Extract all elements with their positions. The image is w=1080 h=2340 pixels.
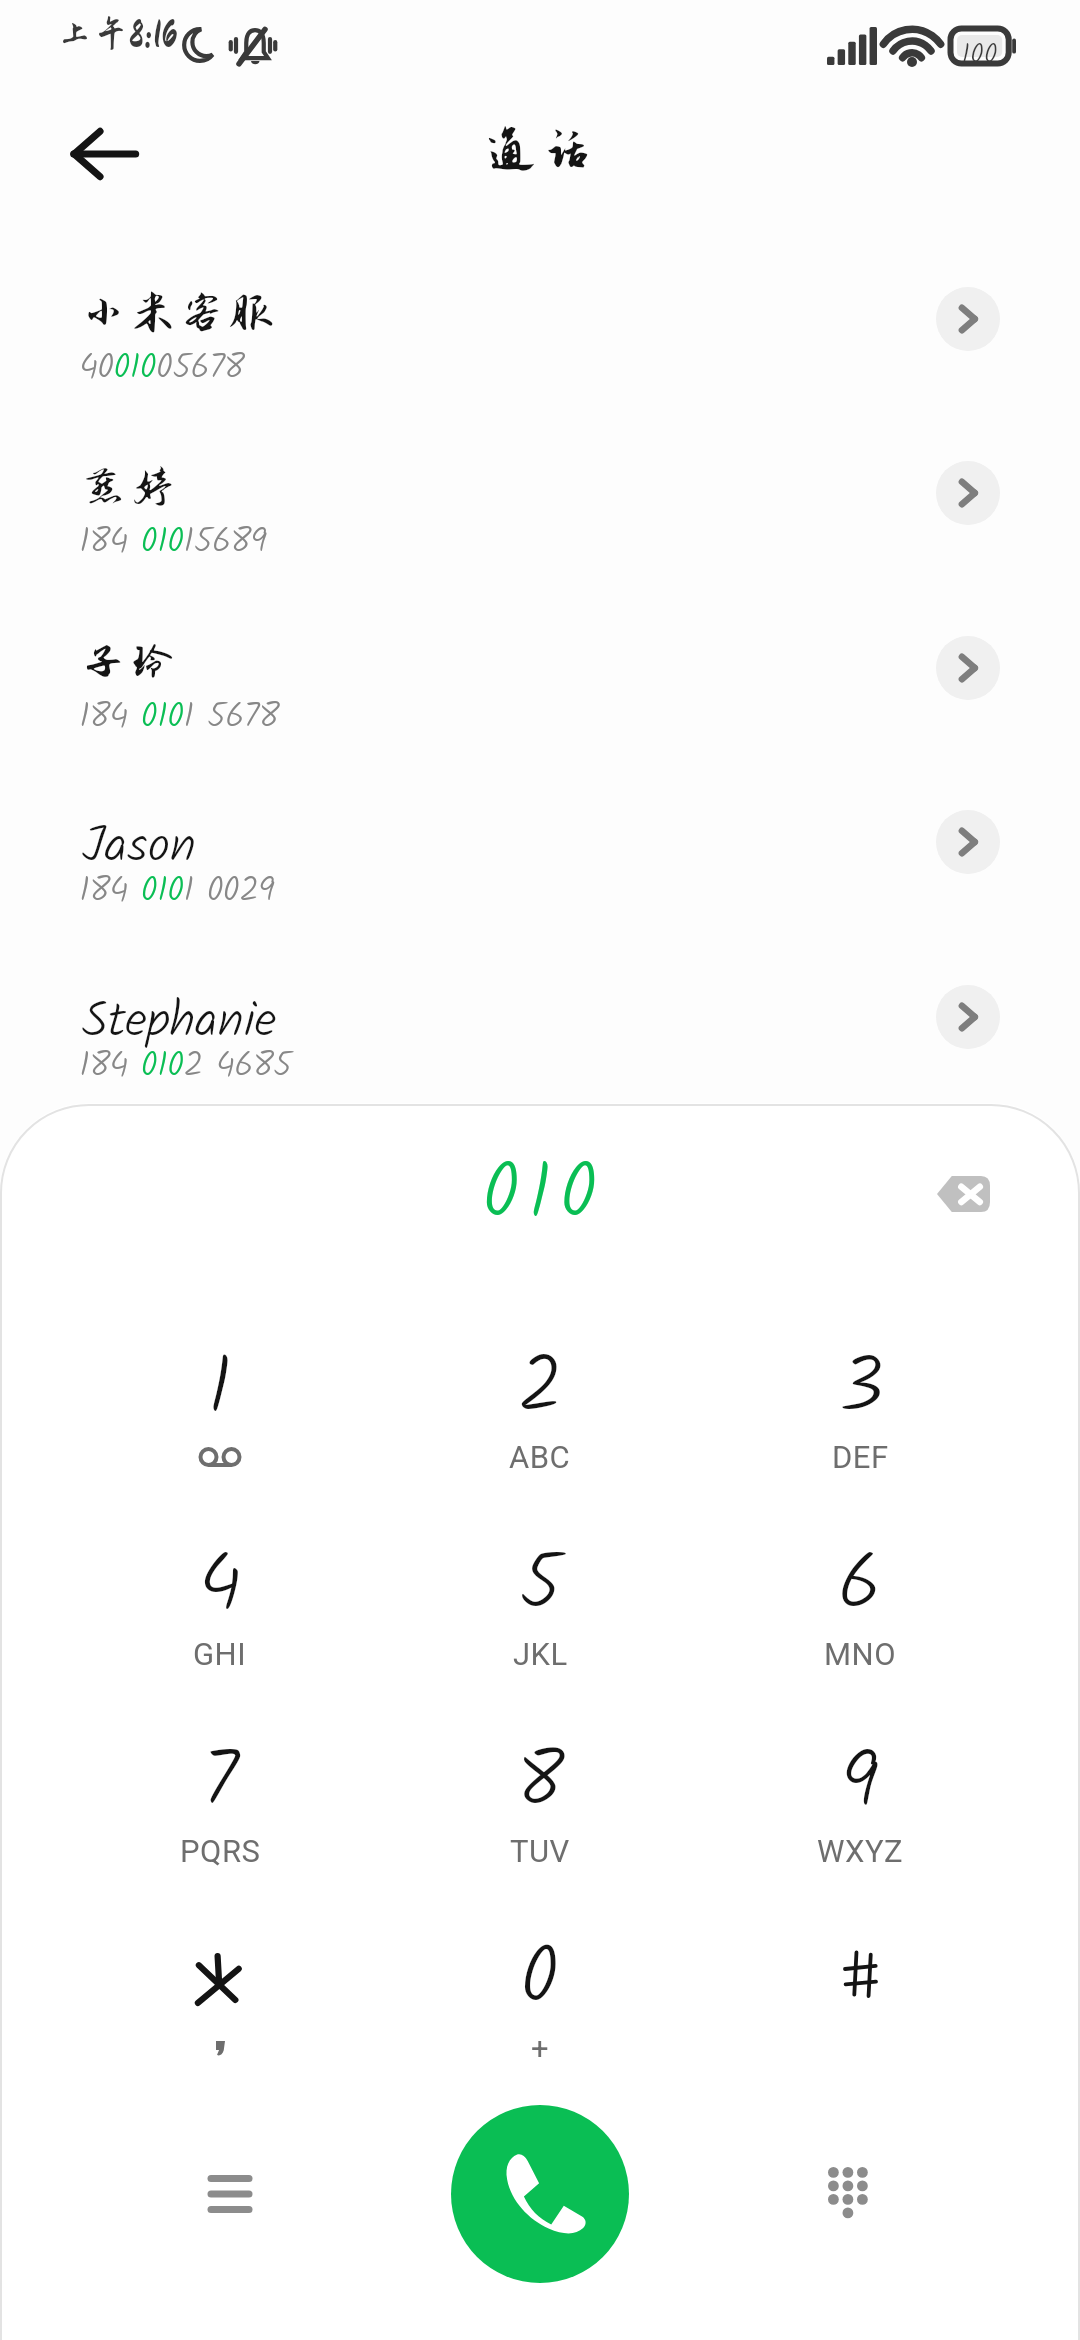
staticText: 100 <box>950 33 1009 78</box>
staticText: ABC <box>509 1439 571 1475</box>
button[interactable]: Back <box>58 108 150 200</box>
button[interactable]: 子玲 <box>0 611 1080 785</box>
button[interactable]: Open contact <box>936 636 1000 700</box>
button[interactable]: 5 <box>380 1523 700 1720</box>
staticText: 010 <box>482 1133 605 1257</box>
button[interactable]: 6 <box>700 1523 1020 1720</box>
staticText: 184 0101 0029 <box>79 864 274 920</box>
staticText: 5 <box>518 1523 563 1651</box>
staticText: TUV <box>510 1833 570 1869</box>
button[interactable]: Call log options <box>175 2139 285 2249</box>
button[interactable]: Backspace <box>908 1150 1018 1238</box>
staticText: DEF <box>832 1439 889 1475</box>
staticText: 通话 <box>487 122 601 176</box>
staticText: 184 0102 4685 <box>79 1039 292 1095</box>
staticText: 184 01015689 <box>79 515 267 571</box>
button[interactable]: Open contact <box>936 287 1000 351</box>
button[interactable]: Hide keypad <box>793 2139 903 2249</box>
staticText: 3 <box>837 1326 884 1454</box>
button[interactable]: 小米客服 <box>0 262 1080 436</box>
staticText: 8 <box>516 1720 565 1848</box>
staticText: 小米客服 <box>82 289 279 337</box>
staticText: 9 <box>841 1720 880 1848</box>
staticText: PQRS <box>180 1833 261 1869</box>
button[interactable]: 8 <box>380 1720 700 1917</box>
button[interactable]: 7 <box>60 1720 380 1917</box>
button[interactable]: Stephanie <box>0 960 1080 1134</box>
staticText: MNO <box>824 1636 897 1672</box>
staticText: 184 0101 5678 <box>79 690 279 746</box>
button[interactable]: 4 <box>60 1523 380 1720</box>
staticText: 4 <box>198 1523 243 1651</box>
staticText: 燕婷 <box>82 463 181 511</box>
button[interactable]: 燕婷 <box>0 436 1080 610</box>
staticText: 2 <box>517 1326 564 1454</box>
staticText: Jason <box>82 808 197 888</box>
button[interactable]: Open contact <box>936 461 1000 525</box>
button[interactable]: 3 <box>700 1326 1020 1523</box>
button[interactable]: Call <box>451 2105 629 2283</box>
button[interactable]: 2 <box>380 1326 700 1523</box>
staticText: JKL <box>513 1636 568 1672</box>
staticText: 子玲 <box>82 638 181 686</box>
button[interactable]: Pound <box>700 1917 1020 2114</box>
staticText: 上午8:16 <box>57 14 178 54</box>
staticText: 7 <box>202 1720 239 1848</box>
button[interactable]: Open contact <box>936 810 1000 874</box>
button[interactable]: Star <box>60 1917 380 2114</box>
staticText: GHI <box>193 1636 247 1672</box>
staticText: + <box>531 2030 550 2066</box>
staticText: WXYZ <box>817 1833 904 1869</box>
button[interactable]: Open contact <box>936 985 1000 1049</box>
staticText: 6 <box>837 1523 883 1651</box>
staticText: 4001005678 <box>79 341 244 397</box>
staticText: 1 <box>207 1326 233 1454</box>
staticText: Stephanie <box>82 983 277 1063</box>
staticText: 0 <box>520 1917 560 2045</box>
button[interactable]: 0 <box>380 1917 700 2114</box>
button[interactable]: 9 <box>700 1720 1020 1917</box>
button[interactable]: Jason <box>0 785 1080 959</box>
button[interactable]: 1 <box>60 1326 380 1523</box>
